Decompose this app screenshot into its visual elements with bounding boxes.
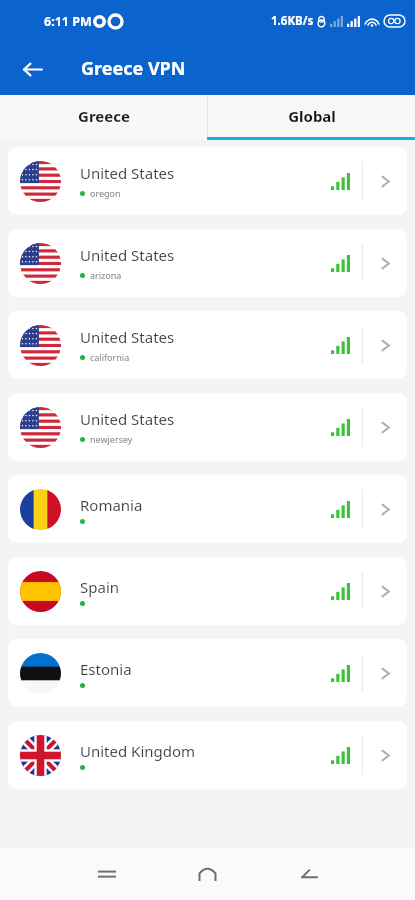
button[interactable]: Estonia bbox=[8, 639, 407, 707]
button[interactable]: Back bbox=[258, 848, 359, 900]
staticText: newjersey bbox=[90, 433, 133, 445]
staticText: Global bbox=[288, 106, 336, 126]
staticText: United States bbox=[80, 245, 175, 265]
button[interactable]: United States bbox=[8, 229, 407, 297]
staticText: arizona bbox=[90, 269, 122, 281]
staticText: Spain bbox=[80, 577, 120, 597]
button[interactable]: United States bbox=[8, 393, 407, 461]
staticText: United Kingdom bbox=[80, 741, 196, 761]
button[interactable]: Recents bbox=[56, 848, 157, 900]
button[interactable]: Home bbox=[157, 848, 258, 900]
staticText: 6:11 PM bbox=[44, 13, 92, 30]
button[interactable]: Greece bbox=[0, 95, 207, 137]
staticText: Romania bbox=[80, 495, 143, 515]
staticText: United States bbox=[80, 327, 175, 347]
staticText: United States bbox=[80, 409, 175, 429]
button[interactable]: Back bbox=[12, 49, 52, 89]
staticText: oregon bbox=[90, 187, 121, 199]
staticText: Greece VPN bbox=[81, 56, 186, 81]
button[interactable]: United States bbox=[8, 311, 407, 379]
button[interactable]: United States bbox=[8, 147, 407, 215]
staticText: Greece bbox=[78, 106, 130, 126]
button[interactable]: Spain bbox=[8, 557, 407, 625]
button[interactable]: Romania bbox=[8, 475, 407, 543]
staticText: 1.6KB/s bbox=[271, 13, 314, 29]
button[interactable]: Global bbox=[208, 95, 415, 137]
staticText: california bbox=[90, 351, 130, 363]
staticText: Estonia bbox=[80, 659, 132, 679]
staticText: United States bbox=[80, 163, 175, 183]
button[interactable]: United Kingdom bbox=[8, 721, 407, 789]
